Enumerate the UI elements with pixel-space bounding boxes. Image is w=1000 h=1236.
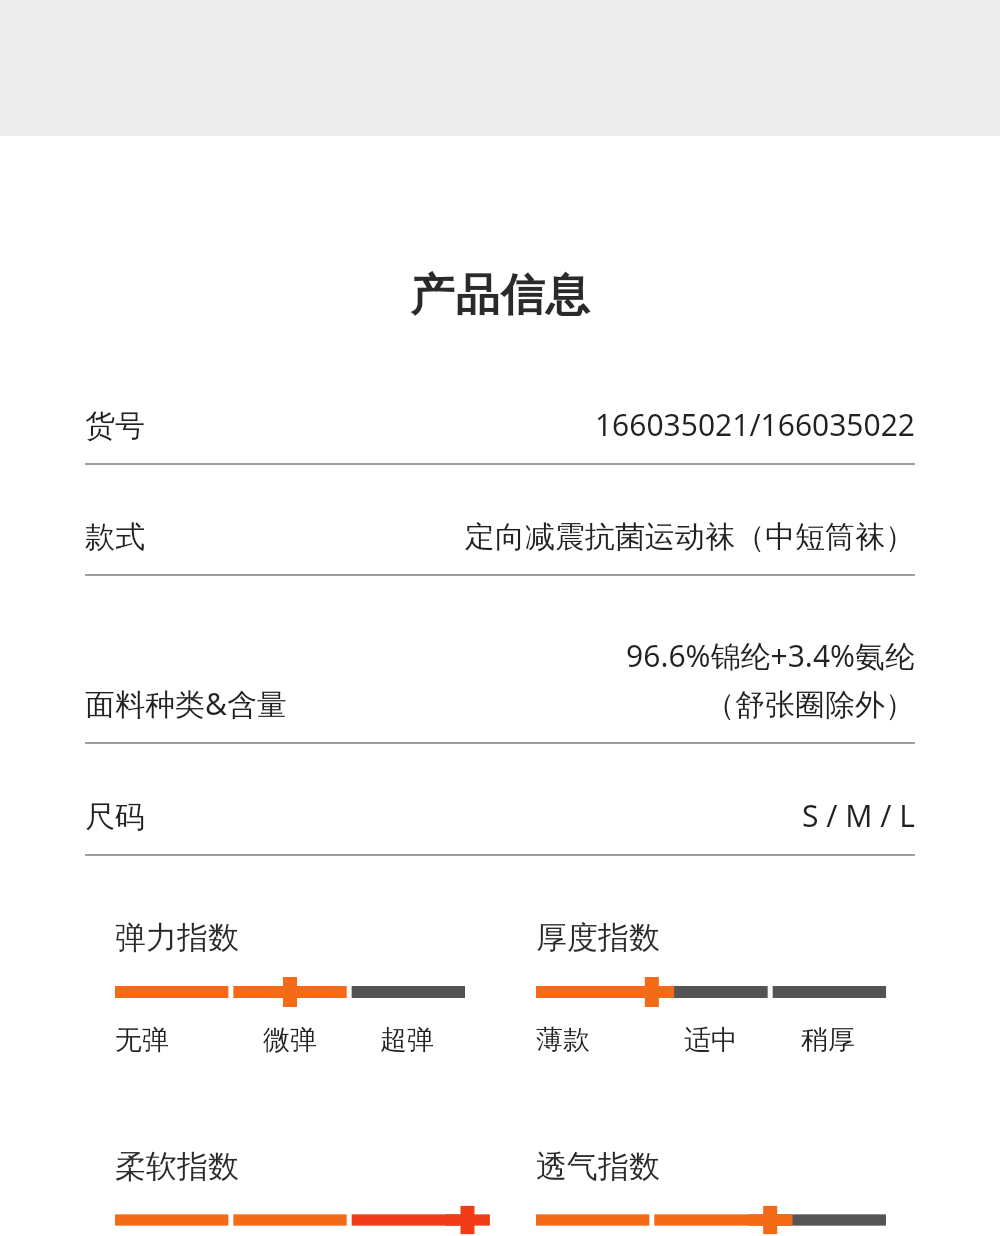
staticText: 尺码 — [85, 798, 145, 836]
staticText: 96.6%锦纶+3.4%氨纶 — [626, 635, 915, 676]
staticText: 无弹 — [115, 1023, 169, 1057]
staticText: 面料种类&含量 — [85, 683, 287, 724]
button[interactable]: 透气指数 — [536, 1147, 886, 1236]
staticText: 稍厚 — [801, 1023, 855, 1057]
staticText: S / M / L — [802, 795, 915, 836]
button[interactable]: 货号 — [0, 375, 1000, 465]
staticText: 薄款 — [536, 1023, 590, 1057]
staticText: 超弹 — [380, 1023, 434, 1057]
staticText: 微弹 — [263, 1023, 317, 1057]
staticText: 柔软指数 — [115, 1147, 239, 1186]
staticText: 弹力指数 — [115, 918, 239, 957]
staticText: （舒张圈除外） — [705, 686, 915, 724]
button[interactable]: 款式 — [0, 465, 1000, 576]
staticText: 透气指数 — [536, 1147, 660, 1186]
button[interactable]: 厚度指数 — [536, 918, 886, 1057]
button[interactable]: 尺码 — [0, 744, 1000, 856]
staticText: 款式 — [85, 518, 145, 556]
staticText: 产品信息 — [410, 268, 590, 323]
staticText: 166035021/166035022 — [594, 404, 915, 445]
staticText: 货号 — [85, 407, 145, 445]
button[interactable]: 柔软指数 — [115, 1147, 465, 1236]
button[interactable]: 弹力指数 — [115, 918, 465, 1057]
button[interactable]: 面料种类&含量 — [0, 576, 1000, 744]
staticText: 厚度指数 — [536, 918, 660, 957]
staticText: 定向减震抗菌运动袜（中短筒袜） — [465, 518, 915, 556]
staticText: 适中 — [684, 1023, 738, 1057]
